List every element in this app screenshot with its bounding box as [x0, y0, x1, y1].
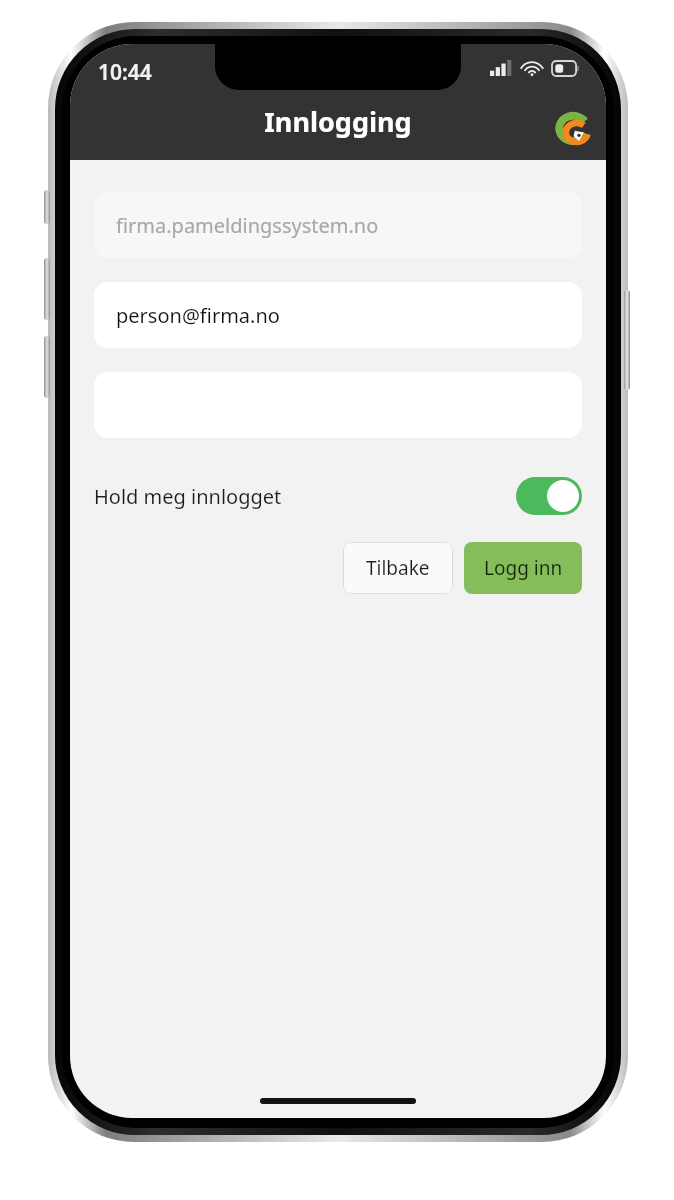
button[interactable]: Logg inn: [464, 542, 582, 594]
staticText: Hold meg innlogget: [94, 483, 282, 510]
button[interactable]: Hold meg innlogget: [94, 468, 582, 524]
button[interactable]: firma.pameldingssystem.no: [94, 192, 582, 258]
button[interactable]: App logo: [558, 114, 588, 144]
staticText: Tilbake: [366, 555, 430, 581]
staticText: Logg inn: [484, 555, 563, 581]
staticText: 10:44: [98, 58, 152, 87]
staticText: person@firma.no: [116, 302, 280, 329]
staticText: Innlogging: [264, 103, 412, 140]
staticText: firma.pameldingssystem.no: [116, 212, 379, 239]
button[interactable]: Tilbake: [343, 542, 453, 594]
button[interactable]: person@firma.no: [94, 282, 582, 348]
